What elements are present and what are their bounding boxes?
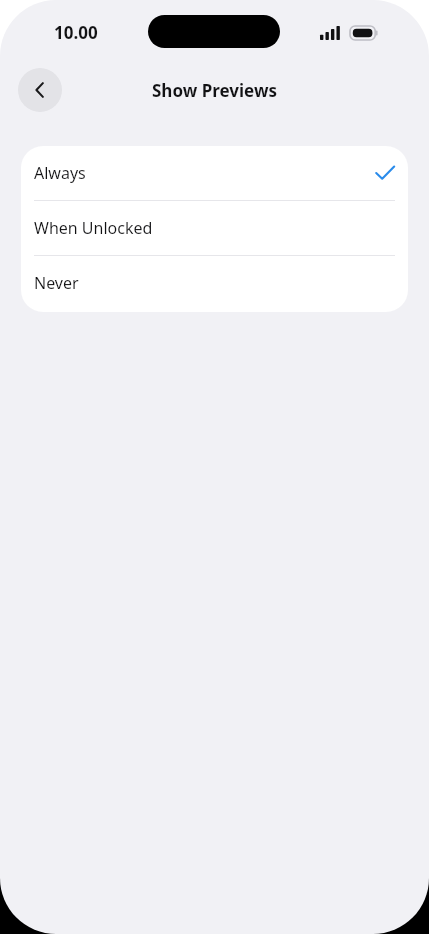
- staticText: Never: [34, 272, 79, 294]
- button[interactable]: Never: [21, 256, 408, 310]
- staticText: 10.00: [54, 21, 98, 44]
- button[interactable]: When Unlocked: [21, 201, 408, 255]
- button[interactable]: Back: [18, 68, 62, 112]
- button[interactable]: Always: [21, 146, 408, 200]
- staticText: Always: [34, 162, 86, 184]
- staticText: Show Previews: [152, 79, 277, 102]
- staticText: When Unlocked: [34, 217, 153, 239]
